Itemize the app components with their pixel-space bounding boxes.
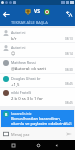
staticText: ☺ bbox=[11, 51, 16, 56]
staticText: 08:14 bbox=[65, 52, 73, 56]
staticText: k/r bbox=[11, 36, 17, 42]
button[interactable]: B bbox=[1, 110, 74, 127]
staticText: 08:45 bbox=[65, 101, 73, 105]
staticText: kazanclisiniz bbox=[11, 111, 32, 116]
button[interactable]: Back bbox=[53, 142, 59, 148]
staticText: Autori ni bbox=[11, 30, 26, 35]
button[interactable]: Autori ni bbox=[0, 43, 75, 57]
staticText: 08:45 bbox=[65, 82, 73, 86]
button[interactable]: Send bbox=[65, 130, 73, 138]
staticText: @Autoral: ok sarit bbox=[11, 66, 46, 72]
staticText: 08:30 bbox=[65, 68, 73, 72]
staticText: Douglas Ghost br bbox=[11, 76, 41, 81]
button[interactable]: Back bbox=[1, 9, 11, 19]
staticText: 08:13 bbox=[65, 37, 73, 41]
button[interactable]: Attach image bbox=[2, 130, 10, 138]
staticText: Matthew Rossi bbox=[11, 60, 36, 65]
staticText: Autori ni bbox=[11, 45, 26, 50]
staticText: 2 b 0 ss 3 b 1 for bbox=[11, 96, 44, 102]
staticText: +1,5 bbox=[11, 82, 20, 87]
button[interactable]: Home bbox=[35, 142, 41, 148]
button[interactable]: nikki Fratelli bbox=[0, 88, 75, 106]
staticText: VS bbox=[34, 8, 41, 15]
staticText: nikki Fratelli bbox=[11, 90, 32, 95]
staticText: Bonuslhostlan kazandiran, olumlu ve payl… bbox=[11, 116, 72, 126]
button[interactable]: Recents bbox=[10, 142, 16, 148]
button[interactable]: Douglas Ghost br bbox=[0, 74, 75, 87]
button[interactable]: Translate bbox=[64, 9, 74, 19]
button[interactable]: Autori ni bbox=[0, 28, 75, 42]
staticText: B bbox=[5, 112, 8, 117]
staticText: TEKRAR AİLE BAŞLA bbox=[11, 20, 48, 25]
staticText: Mesaj yaz bbox=[11, 132, 30, 137]
staticText: 08:45 bbox=[64, 122, 72, 126]
button[interactable]: Matthew Rossi bbox=[0, 58, 75, 73]
